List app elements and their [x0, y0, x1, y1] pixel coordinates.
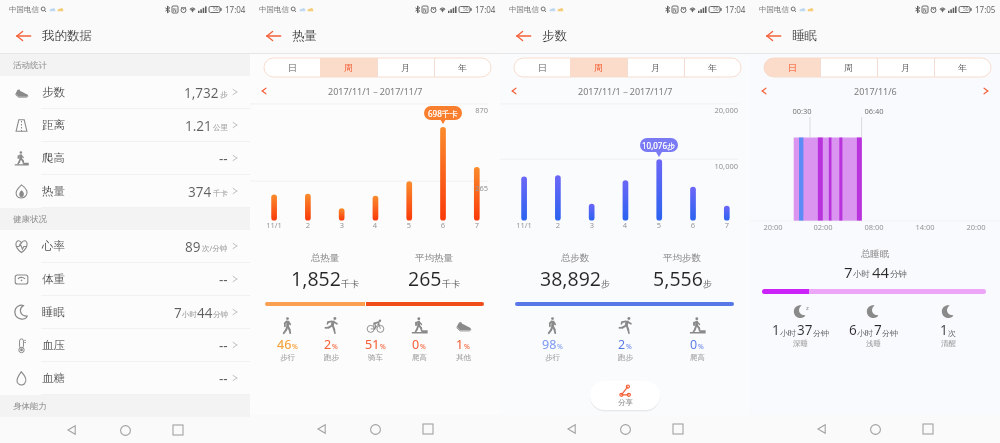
button[interactable]: 6 — [833, 304, 913, 348]
staticText: 步行 — [280, 353, 295, 362]
staticText: % — [332, 342, 338, 352]
button[interactable]: 51 — [350, 317, 400, 362]
staticText: 总步数 — [535, 252, 615, 264]
button[interactable]: Back — [508, 21, 538, 51]
button[interactable]: 血糖 — [0, 362, 250, 395]
button[interactable]: Back — [310, 417, 334, 441]
button[interactable]: Back — [758, 21, 788, 51]
button[interactable]: Back — [258, 21, 288, 51]
button[interactable]: 日 — [514, 58, 570, 77]
button[interactable]: Home — [863, 417, 887, 441]
staticText: 06:40 — [859, 106, 889, 116]
button[interactable]: 日 — [264, 58, 320, 77]
button[interactable]: 爬高 — [0, 142, 250, 175]
staticText: 公里 — [213, 123, 228, 132]
button[interactable]: Previous period — [507, 84, 521, 98]
staticText: 698千卡 — [428, 108, 458, 119]
button[interactable]: Back — [60, 418, 84, 442]
staticText: 44 — [197, 304, 213, 322]
button[interactable]: 热量 — [0, 175, 250, 208]
button[interactable]: 周 — [570, 58, 627, 77]
button[interactable]: Recents — [666, 417, 690, 441]
button[interactable]: 日 — [764, 58, 820, 77]
staticText: 爬高 — [42, 151, 65, 165]
staticText: 分钟 — [882, 328, 898, 338]
button[interactable]: 月 — [377, 58, 434, 77]
button[interactable]: 睡眠 — [0, 296, 250, 329]
button[interactable]: 年 — [684, 58, 741, 77]
staticText: 次/分钟 — [202, 243, 228, 253]
button[interactable]: 分享 — [590, 381, 660, 410]
button[interactable]: Back — [8, 21, 38, 51]
button[interactable]: 0 — [394, 317, 444, 362]
button[interactable]: Home — [113, 418, 137, 442]
button[interactable]: Recents — [916, 417, 940, 441]
button[interactable]: Next period — [979, 84, 993, 98]
button[interactable]: 2 — [306, 317, 356, 362]
staticText: 浅睡 — [866, 339, 881, 348]
staticText: 月 — [651, 62, 660, 73]
staticText: 1,732 — [184, 84, 219, 102]
button[interactable]: 周 — [820, 58, 877, 77]
staticText: 374 — [188, 183, 212, 201]
staticText: 清醒 — [941, 339, 956, 348]
button[interactable]: 1 — [438, 317, 488, 362]
staticText: 千卡 — [213, 189, 228, 198]
staticText: 小时 — [182, 310, 197, 319]
button[interactable]: 距离 — [0, 109, 250, 142]
button[interactable]: Back — [810, 417, 834, 441]
button[interactable]: Recents — [416, 417, 440, 441]
staticText: 6 — [849, 321, 857, 339]
button[interactable]: Previous period — [257, 84, 271, 98]
staticText: 血压 — [42, 338, 65, 352]
button[interactable]: Back — [560, 417, 584, 441]
button[interactable]: z — [760, 304, 840, 348]
staticText: 步 — [601, 278, 610, 289]
staticText: 00:30 — [787, 106, 817, 116]
button[interactable]: Home — [363, 417, 387, 441]
staticText: 870 — [250, 105, 488, 115]
staticText: 中国电信 — [259, 5, 289, 14]
staticText: 体重 — [42, 272, 65, 286]
button[interactable]: 月 — [627, 58, 684, 77]
button[interactable]: 98 — [527, 317, 577, 362]
staticText: 月 — [401, 62, 410, 73]
button[interactable]: 年 — [934, 58, 991, 77]
staticText: 5 — [397, 220, 421, 230]
staticText: 月 — [901, 62, 910, 73]
staticText: 14:00 — [910, 222, 940, 232]
button[interactable]: 1 — [908, 304, 988, 348]
staticText: 98 — [542, 336, 557, 353]
button[interactable]: 步数 — [0, 76, 250, 109]
button[interactable]: 体重 — [0, 263, 250, 296]
staticText: 2 — [546, 220, 570, 230]
staticText: 3 — [330, 220, 354, 230]
button[interactable]: 心率 — [0, 230, 250, 263]
button[interactable]: 周 — [320, 58, 377, 77]
button[interactable]: 月 — [877, 58, 934, 77]
staticText: 08:00 — [859, 222, 889, 232]
staticText: 11/1 — [262, 220, 286, 230]
staticText: 1 — [456, 336, 464, 353]
staticText: -- — [219, 370, 228, 388]
staticText: 年 — [458, 62, 467, 73]
button[interactable]: 年 — [434, 58, 491, 77]
button[interactable]: 46 — [262, 317, 312, 362]
button[interactable]: Recents — [166, 418, 190, 442]
staticText: 17:04 — [725, 4, 746, 15]
button[interactable]: Home — [613, 417, 637, 441]
staticText: 50 — [963, 6, 969, 13]
staticText: % — [380, 342, 386, 352]
staticText: 20:00 — [961, 222, 991, 232]
staticText: 热量 — [42, 184, 65, 198]
button[interactable]: 血压 — [0, 329, 250, 362]
staticText: 总热量 — [285, 252, 365, 264]
button[interactable]: 2 — [600, 317, 650, 362]
staticText: 02:00 — [808, 222, 838, 232]
staticText: 中国电信 — [9, 5, 39, 14]
staticText: 日 — [788, 62, 797, 73]
button[interactable]: Previous period — [757, 84, 771, 98]
staticText: % — [557, 342, 563, 352]
button[interactable]: 0 — [672, 317, 722, 362]
staticText: 51 — [365, 336, 380, 353]
